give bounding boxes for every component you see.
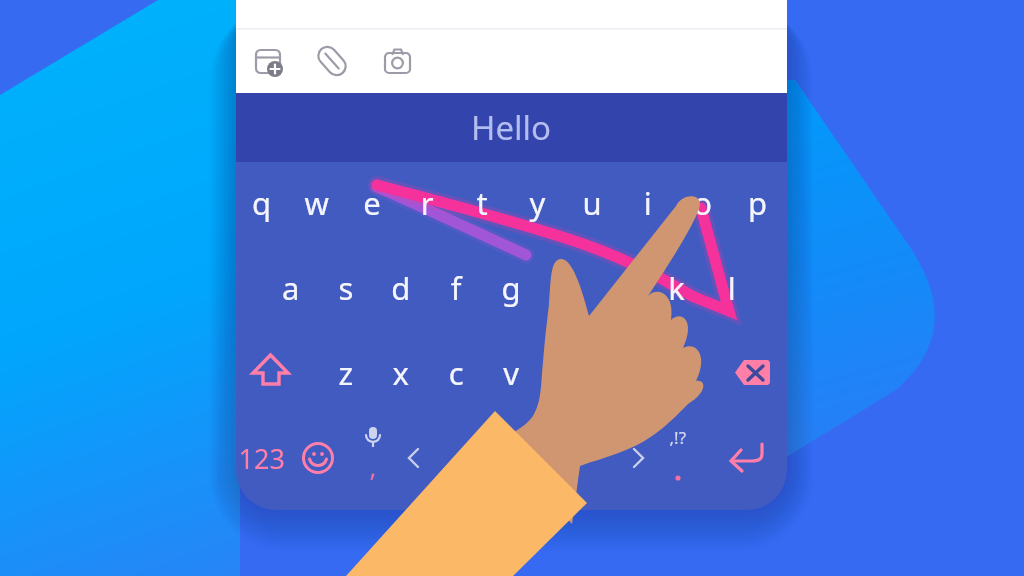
button[interactable]: b	[539, 340, 594, 410]
button[interactable]: k	[648, 254, 703, 326]
button[interactable]: f	[428, 254, 483, 326]
button[interactable]: q	[235, 167, 290, 239]
button[interactable]: w	[290, 167, 345, 239]
button[interactable]: o	[675, 167, 730, 239]
button[interactable]: Numbers	[240, 424, 288, 494]
button[interactable]: z	[319, 340, 374, 410]
button[interactable]: r	[400, 167, 455, 239]
button[interactable]: c	[429, 340, 484, 410]
button[interactable]: d	[373, 254, 428, 326]
button[interactable]: j	[593, 254, 648, 326]
button[interactable]: u	[565, 167, 620, 239]
button[interactable]: m	[649, 340, 704, 410]
button[interactable]: Enter	[716, 424, 778, 494]
button[interactable]: s	[318, 254, 373, 326]
button[interactable]	[460, 95, 564, 159]
button[interactable]: Voice input	[350, 424, 396, 494]
button[interactable]: i	[620, 167, 675, 239]
button[interactable]: Next	[618, 424, 660, 494]
button[interactable]: Space	[440, 424, 612, 494]
button[interactable]: v	[484, 340, 539, 410]
button[interactable]: l	[703, 254, 758, 326]
button[interactable]: p	[730, 167, 785, 239]
button[interactable]: t	[455, 167, 510, 239]
button[interactable]: Shift	[243, 340, 299, 410]
button[interactable]: Attach file	[312, 40, 352, 82]
button[interactable]: Previous	[394, 424, 438, 494]
button[interactable]: Emoji	[296, 424, 342, 494]
button[interactable]: Add note	[250, 40, 290, 82]
button[interactable]: e	[345, 167, 400, 239]
button[interactable]: Take photo	[378, 40, 418, 82]
button[interactable]: a	[263, 254, 318, 326]
button[interactable]: h	[538, 254, 593, 326]
button[interactable]: Backspace	[725, 340, 781, 410]
button[interactable]: y	[510, 167, 565, 239]
button[interactable]: x	[374, 340, 429, 410]
button[interactable]: Punctuation	[658, 424, 702, 494]
button[interactable]: g	[483, 254, 538, 326]
